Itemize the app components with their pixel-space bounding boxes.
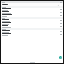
button[interactable] [1,19,63,22]
button[interactable] [1,11,63,14]
button[interactable]: Add [59,56,62,59]
button[interactable] [2,4,8,5]
button[interactable] [1,22,63,25]
button[interactable] [1,30,63,33]
button[interactable] [1,14,63,17]
button[interactable] [1,25,63,28]
button[interactable]: Search [57,4,59,6]
button[interactable] [1,33,63,36]
button[interactable] [1,8,63,11]
